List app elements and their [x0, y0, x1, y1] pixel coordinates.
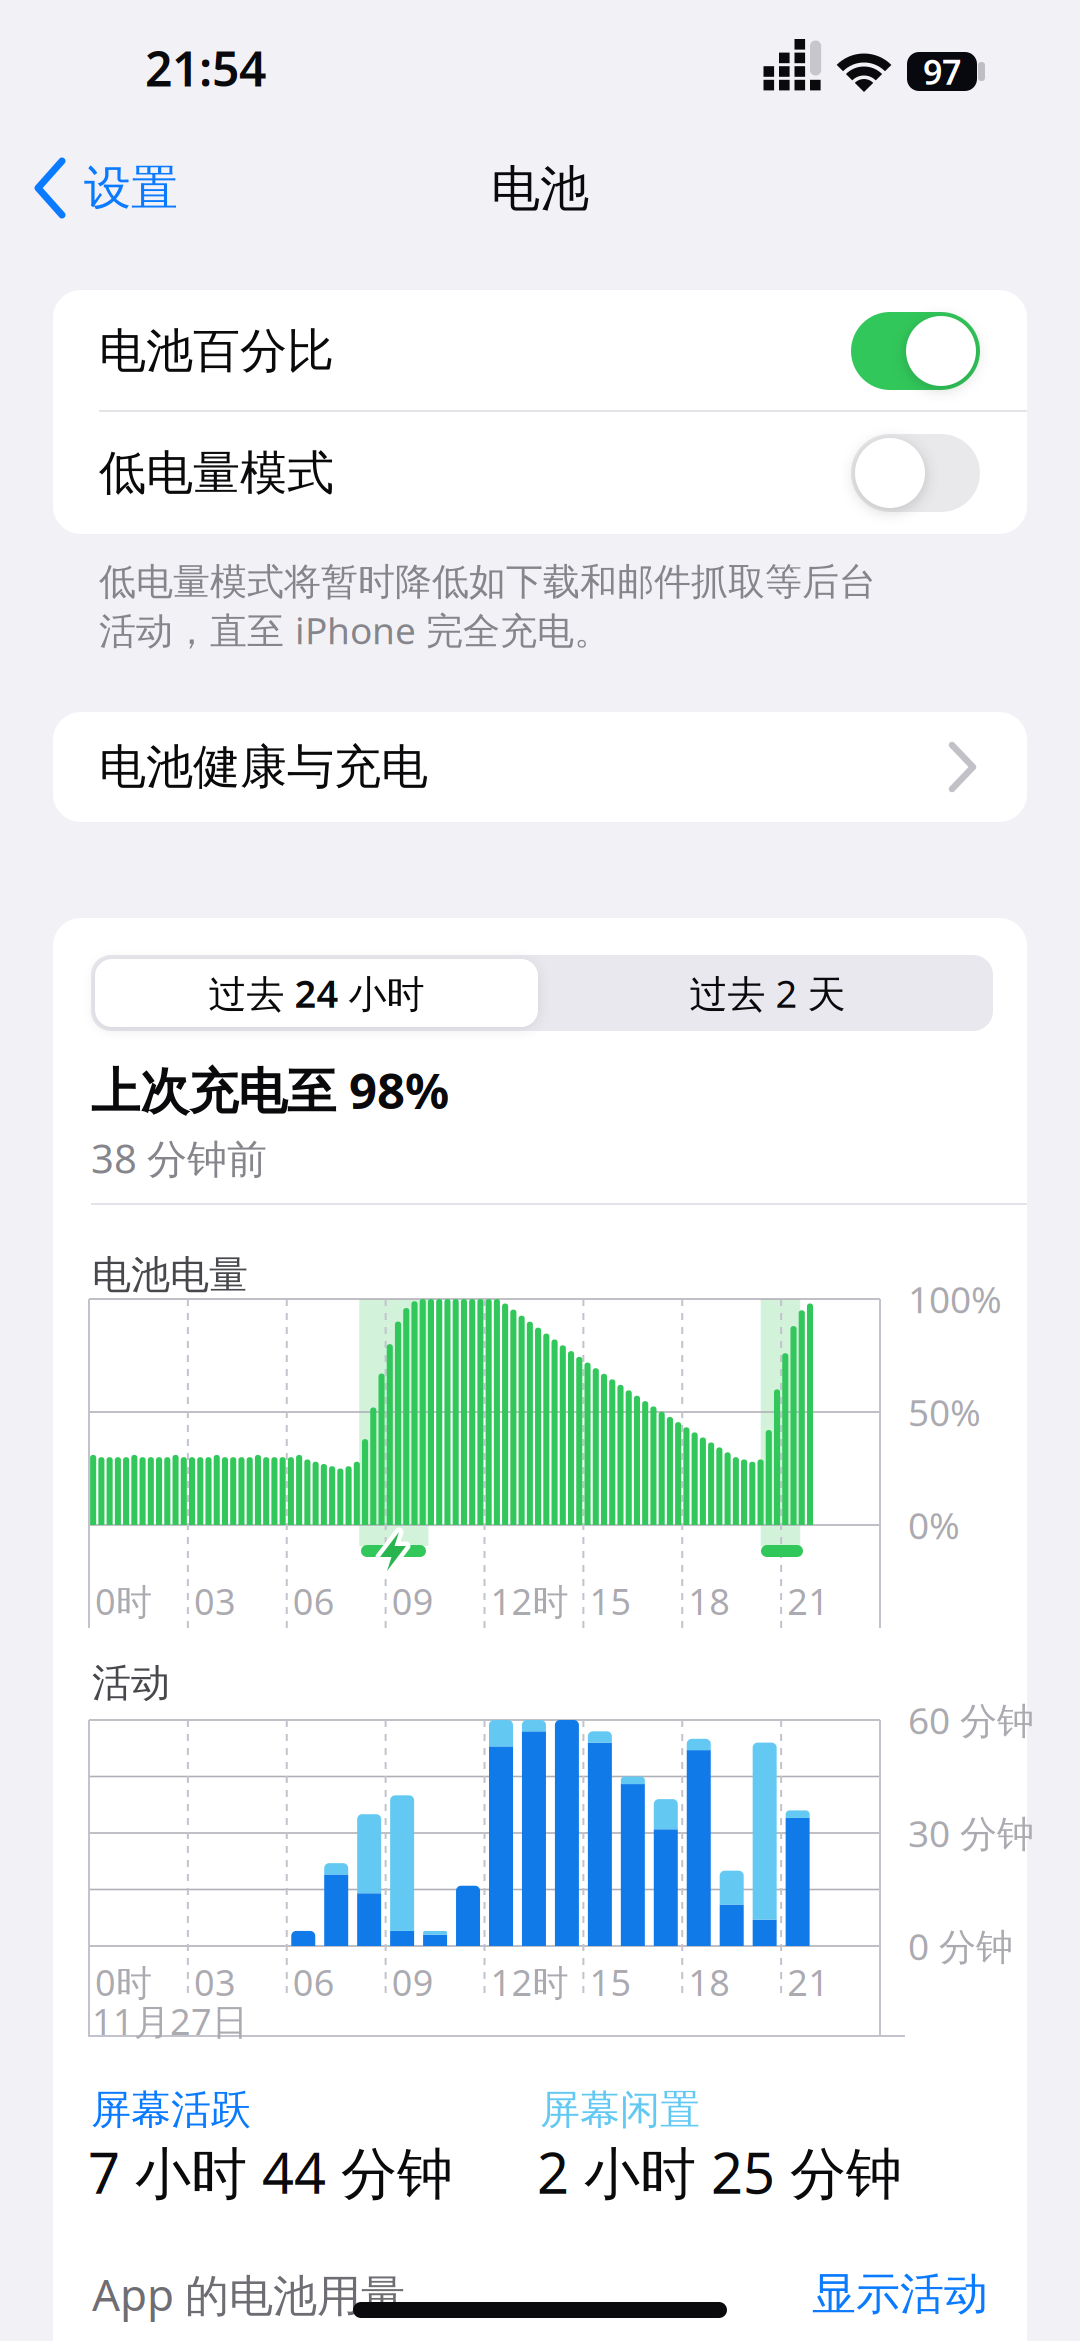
staticText: 12时	[490, 1958, 568, 2006]
staticText: 低电量模式	[99, 444, 334, 502]
staticText: 低电量模式将暂时降低如下载和邮件抓取等后台	[99, 559, 876, 605]
staticText: 上次充电至 98%	[91, 1057, 449, 1123]
staticText: 03	[194, 1958, 236, 2006]
staticText: 30 分钟	[908, 1808, 1034, 1857]
staticText: 97	[923, 49, 961, 94]
staticText: 电池健康与充电	[99, 738, 428, 796]
button[interactable]: 低电量模式	[53, 412, 1027, 533]
staticText: 15	[589, 1958, 631, 2006]
staticText: App 的电池用量	[92, 2265, 405, 2323]
staticText: 显示活动	[812, 2267, 988, 2321]
button[interactable]: 显示活动	[688, 2267, 988, 2321]
staticText: 06	[293, 1577, 335, 1625]
button[interactable]: 电池健康与充电	[53, 712, 1027, 822]
button[interactable]: 过去 2 天	[542, 955, 993, 1031]
staticText: 18	[688, 1958, 730, 2006]
staticText: 21:54	[145, 36, 266, 100]
staticText: 03	[194, 1577, 236, 1625]
staticText: 06	[293, 1958, 335, 2006]
staticText: 18	[688, 1577, 730, 1625]
button[interactable]: 电池百分比	[53, 290, 1027, 411]
staticText: 电池百分比	[99, 322, 334, 380]
staticText: 11月27日	[92, 1997, 248, 2045]
staticText: 屏幕闲置	[540, 2085, 700, 2134]
staticText: 7 小时 44 分钟	[88, 2135, 453, 2209]
staticText: 21	[787, 1958, 829, 2006]
staticText: 15	[589, 1577, 631, 1625]
staticText: 屏幕活跃	[91, 2085, 251, 2134]
button[interactable]: 过去 24 小时	[91, 955, 542, 1031]
staticText: 12时	[490, 1577, 568, 1625]
staticText: 09	[392, 1958, 434, 2006]
staticText: 38 分钟前	[91, 1131, 267, 1184]
staticText: 0时	[95, 1958, 152, 2006]
staticText: 21	[787, 1577, 829, 1625]
staticText: 设置	[84, 159, 178, 217]
staticText: 活动，直至 iPhone 完全充电。	[99, 605, 611, 654]
staticText: 活动	[92, 1659, 170, 1707]
staticText: 电池	[491, 159, 589, 219]
staticText: 电池电量	[92, 1251, 248, 1299]
staticText: 60 分钟	[908, 1695, 1034, 1744]
staticText: 0 分钟	[908, 1921, 1013, 1970]
staticText: 0时	[95, 1577, 152, 1625]
staticText: 0%	[908, 1500, 960, 1549]
staticText: 过去 24 小时	[208, 968, 424, 1018]
staticText: 09	[392, 1577, 434, 1625]
button[interactable]: 设置	[32, 143, 252, 233]
staticText: 100%	[908, 1274, 1002, 1323]
staticText: 过去 2 天	[689, 968, 845, 1018]
staticText: 2 小时 25 分钟	[537, 2135, 902, 2209]
staticText: 50%	[908, 1387, 981, 1436]
